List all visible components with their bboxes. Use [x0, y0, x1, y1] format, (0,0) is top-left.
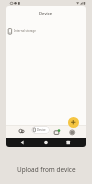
staticText: Device — [37, 128, 46, 132]
button[interactable] — [68, 128, 76, 136]
button[interactable] — [18, 138, 26, 147]
button[interactable] — [68, 117, 79, 128]
staticText: Internal storage — [14, 29, 36, 33]
button[interactable] — [53, 128, 61, 136]
button[interactable] — [42, 138, 50, 147]
button[interactable] — [64, 138, 72, 147]
button[interactable]: Internal storage — [7, 26, 85, 36]
button[interactable]: Device — [31, 126, 50, 134]
staticText: Upload from device — [17, 165, 76, 174]
button[interactable] — [17, 126, 26, 135]
staticText: Device — [39, 11, 53, 17]
